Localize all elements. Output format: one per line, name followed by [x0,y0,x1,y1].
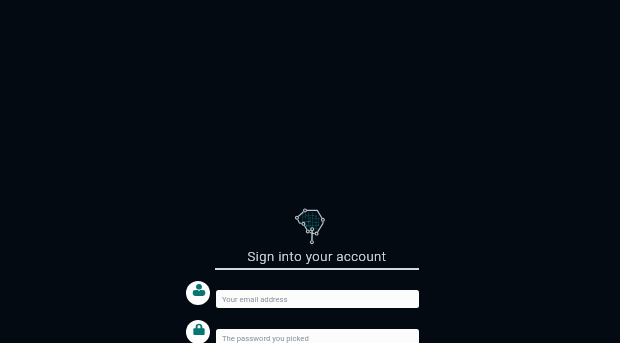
staticText: Sign into your account [247,249,387,264]
staticText: Your email address [222,295,288,304]
button[interactable]: Email [186,281,210,305]
staticText: The password you picked [222,334,309,343]
button[interactable]: Password [186,320,210,343]
button[interactable]: Your email address [216,290,419,308]
button[interactable]: The password you picked [216,329,419,343]
